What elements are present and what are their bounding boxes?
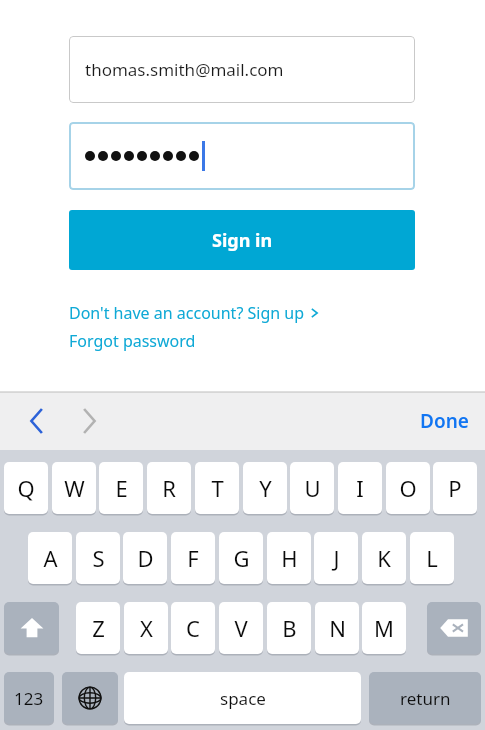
button[interactable]: U bbox=[290, 462, 334, 514]
button[interactable]: thomas.smith@mail.com bbox=[69, 36, 415, 103]
button[interactable]: S bbox=[76, 532, 120, 584]
button[interactable]: Y bbox=[243, 462, 287, 514]
button[interactable]: space bbox=[124, 672, 361, 724]
staticText: L bbox=[426, 543, 438, 573]
button[interactable]: B bbox=[267, 602, 311, 654]
staticText: Z bbox=[92, 613, 105, 643]
staticText: Sign in bbox=[212, 228, 273, 253]
button[interactable]: Previous field bbox=[10, 392, 64, 450]
button[interactable]: return bbox=[369, 672, 481, 724]
staticText: Q bbox=[17, 473, 35, 503]
staticText: F bbox=[187, 543, 199, 573]
staticText: D bbox=[137, 543, 154, 573]
staticText: H bbox=[281, 543, 298, 573]
staticText: E bbox=[115, 473, 128, 503]
staticText: W bbox=[64, 473, 85, 503]
button[interactable]: N bbox=[315, 602, 359, 654]
button[interactable]: Forgot password bbox=[69, 330, 196, 352]
staticText: B bbox=[282, 613, 297, 643]
staticText: Done bbox=[420, 408, 469, 434]
button[interactable]: Don't have an account? Sign up bbox=[69, 302, 319, 324]
staticText: C bbox=[186, 613, 200, 643]
staticText: P bbox=[448, 473, 462, 503]
staticText: I bbox=[356, 473, 364, 503]
button[interactable]: M bbox=[362, 602, 406, 654]
staticText: O bbox=[399, 473, 417, 503]
button[interactable]: A bbox=[28, 532, 72, 584]
staticText: Forgot password bbox=[69, 330, 196, 352]
staticText: X bbox=[140, 613, 153, 643]
button[interactable]: G bbox=[219, 532, 263, 584]
button[interactable]: Change keyboard bbox=[62, 672, 118, 724]
button[interactable]: Next field bbox=[62, 392, 116, 450]
staticText: S bbox=[92, 543, 105, 573]
staticText: M bbox=[374, 613, 394, 643]
staticText: Don't have an account? Sign up bbox=[69, 302, 305, 324]
button[interactable]: D bbox=[123, 532, 167, 584]
button[interactable]: Q bbox=[4, 462, 48, 514]
button[interactable]: C bbox=[171, 602, 215, 654]
button[interactable]: V bbox=[219, 602, 263, 654]
staticText: V bbox=[234, 613, 248, 643]
staticText: G bbox=[233, 543, 250, 573]
button[interactable]: Sign in bbox=[69, 210, 415, 270]
staticText: U bbox=[304, 473, 321, 503]
button[interactable]: K bbox=[362, 532, 406, 584]
button[interactable]: Done bbox=[420, 392, 469, 450]
button[interactable]: P bbox=[433, 462, 477, 514]
button[interactable]: Shift bbox=[4, 602, 59, 654]
staticText: K bbox=[377, 543, 391, 573]
button[interactable]: L bbox=[410, 532, 454, 584]
staticText: thomas.smith@mail.com bbox=[85, 58, 284, 81]
button[interactable]: I bbox=[338, 462, 382, 514]
button[interactable]: T bbox=[195, 462, 239, 514]
staticText: return bbox=[400, 687, 451, 710]
button[interactable]: Backspace bbox=[427, 602, 481, 654]
staticText: Y bbox=[259, 473, 272, 503]
button[interactable]: H bbox=[267, 532, 311, 584]
button[interactable]: X bbox=[124, 602, 168, 654]
staticText: J bbox=[333, 543, 340, 573]
button[interactable]: E bbox=[99, 462, 143, 514]
button[interactable]: Z bbox=[76, 602, 120, 654]
staticText: R bbox=[162, 473, 176, 503]
staticText: N bbox=[329, 613, 346, 643]
button[interactable]: W bbox=[52, 462, 96, 514]
button[interactable]: F bbox=[171, 532, 215, 584]
staticText: 123 bbox=[14, 687, 44, 710]
button[interactable]: 123 bbox=[4, 672, 54, 724]
button[interactable]: R bbox=[147, 462, 191, 514]
button[interactable]: J bbox=[314, 532, 358, 584]
button[interactable] bbox=[69, 122, 415, 190]
staticText: T bbox=[211, 473, 224, 503]
staticText: space bbox=[220, 687, 266, 710]
staticText: A bbox=[43, 543, 58, 573]
button[interactable]: O bbox=[386, 462, 430, 514]
